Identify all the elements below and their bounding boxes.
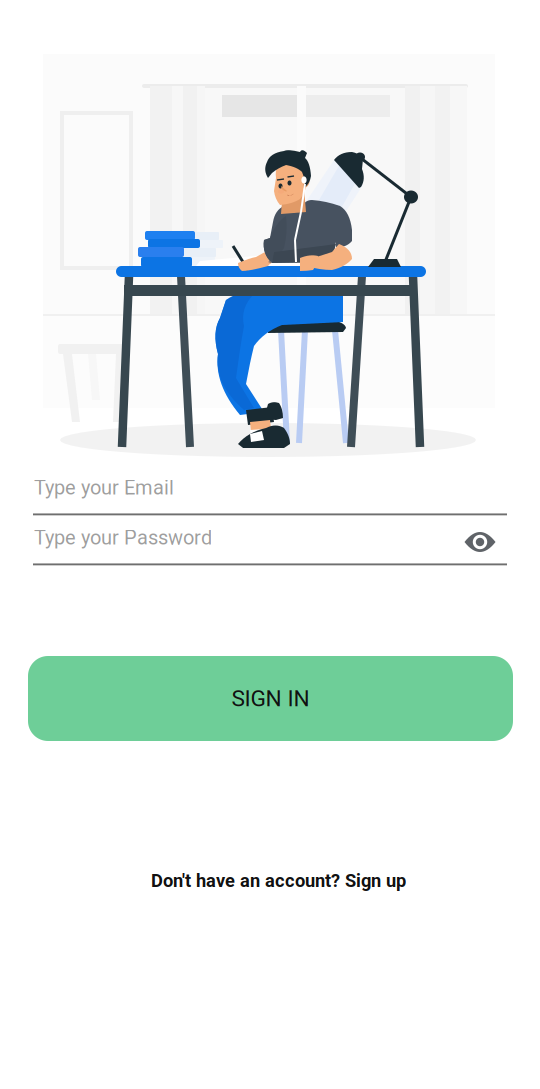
button[interactable]: Show password: [457, 519, 503, 565]
staticText: Type your Email: [34, 476, 174, 499]
button[interactable]: SIGN IN: [28, 656, 513, 741]
staticText: Type your Password: [34, 526, 212, 549]
staticText: SIGN IN: [231, 685, 309, 712]
button[interactable]: Don't have an account? Sign up: [151, 870, 406, 891]
staticText: Don't have an account? Sign up: [151, 870, 406, 891]
